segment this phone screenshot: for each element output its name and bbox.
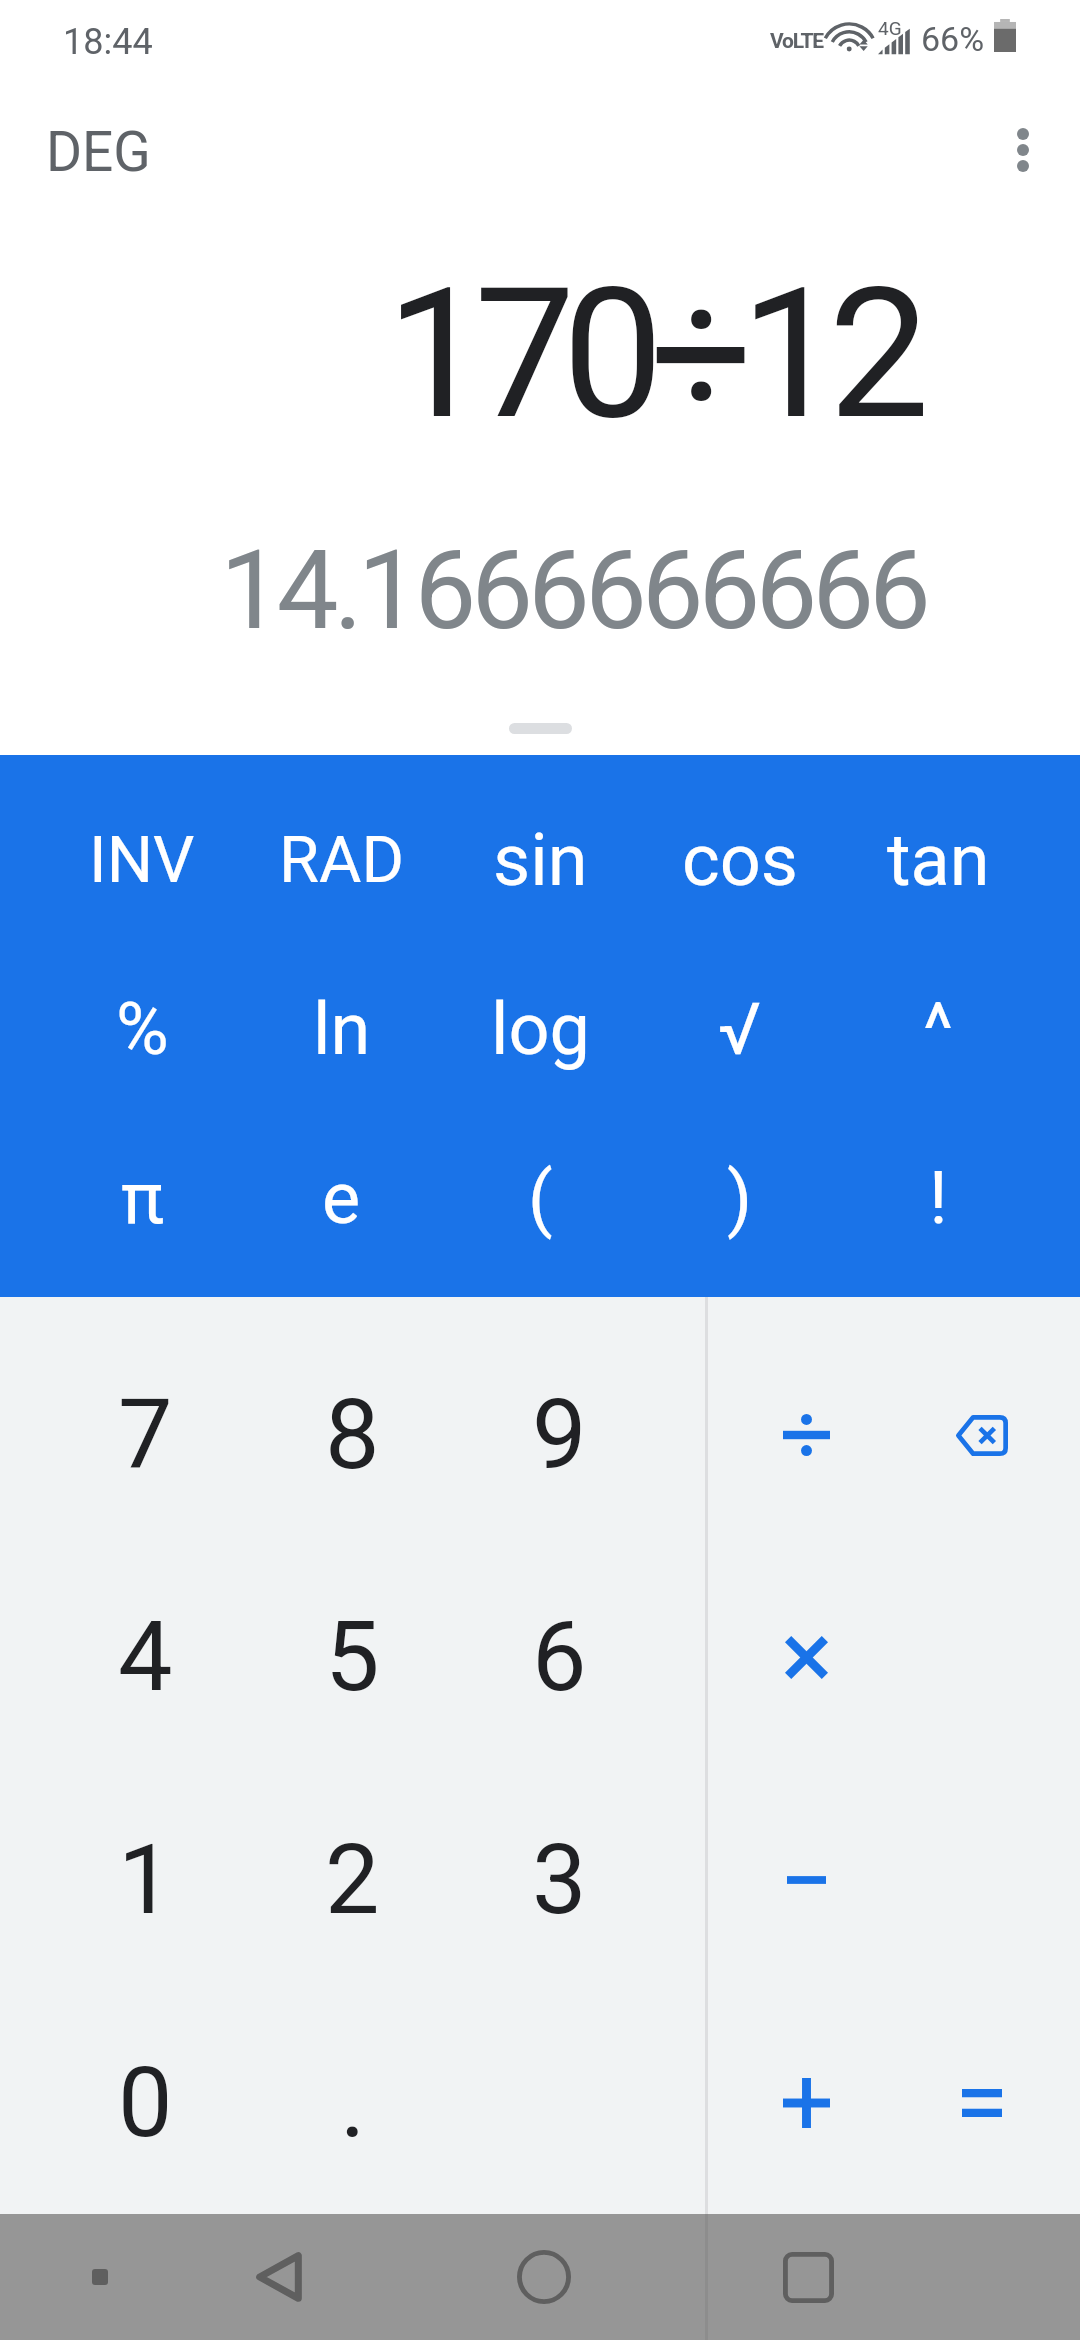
button[interactable]: 6	[456, 1546, 663, 1768]
button[interactable]: sin	[441, 775, 640, 944]
button[interactable]: Backspace	[894, 1324, 1070, 1546]
staticText: sin	[493, 818, 588, 902]
staticText: INV	[89, 822, 195, 898]
staticText: )	[727, 1156, 753, 1240]
button[interactable]: Home	[411, 2214, 676, 2340]
staticText: 2	[325, 1823, 380, 1937]
staticText: ^	[923, 987, 954, 1071]
button[interactable]: Recents	[676, 2214, 941, 2340]
button[interactable]: 1	[42, 1768, 249, 1991]
button[interactable]: π	[42, 1113, 242, 1282]
button[interactable]: 7	[42, 1324, 249, 1546]
staticText: !	[929, 1156, 948, 1240]
button[interactable]: 5	[249, 1546, 456, 1768]
button[interactable]: !	[839, 1113, 1038, 1282]
button[interactable]: %	[42, 944, 242, 1113]
button[interactable]: tan	[839, 775, 1038, 944]
staticText: %	[116, 987, 169, 1071]
staticText: 9	[532, 1378, 587, 1492]
button[interactable]: (	[441, 1113, 640, 1282]
staticText: ln	[313, 987, 371, 1071]
staticText: 1	[118, 1823, 173, 1937]
button[interactable]: 2	[249, 1768, 456, 1991]
staticText: (	[528, 1156, 553, 1240]
button[interactable]: Equals	[894, 1991, 1070, 2214]
button[interactable]: Minus	[718, 1768, 894, 1991]
staticText: 7	[118, 1378, 173, 1492]
staticText: e	[322, 1156, 361, 1240]
button[interactable]: 3	[456, 1768, 663, 1991]
staticText: RAD	[279, 822, 405, 898]
button[interactable]: RAD	[242, 775, 441, 944]
button[interactable]: )	[640, 1113, 839, 1282]
button[interactable]: 9	[456, 1324, 663, 1546]
staticText: tan	[887, 818, 990, 902]
button[interactable]: 0	[42, 1991, 249, 2214]
button[interactable]: Input method	[60, 2214, 140, 2340]
staticText: 66%	[921, 19, 985, 59]
staticText: 8	[325, 1378, 380, 1492]
staticText: 5	[325, 1600, 380, 1714]
staticText: 14.1666666666	[220, 526, 926, 655]
button[interactable]: More options	[978, 105, 1068, 195]
button[interactable]: log	[441, 944, 640, 1113]
staticText: π	[121, 1156, 164, 1240]
button[interactable]: ln	[242, 944, 441, 1113]
staticText: 170÷12	[386, 249, 917, 460]
button[interactable]: INV	[42, 775, 242, 944]
staticText: √	[718, 987, 761, 1071]
staticText: 6	[532, 1600, 587, 1714]
button[interactable]: Multiply	[718, 1546, 894, 1768]
staticText: .	[340, 2046, 366, 2160]
staticText: DEG	[46, 120, 151, 184]
button[interactable]: 8	[249, 1324, 456, 1546]
staticText: 4	[118, 1600, 173, 1714]
button[interactable]: Back	[146, 2214, 411, 2340]
staticText: cos	[682, 818, 798, 902]
staticText: VoLTE	[770, 29, 823, 54]
button[interactable]: ^	[839, 944, 1038, 1113]
button[interactable]: DEG	[0, 102, 181, 202]
staticText: 4G	[878, 17, 902, 39]
button[interactable]: Divide	[718, 1324, 894, 1546]
button[interactable]: e	[242, 1113, 441, 1282]
button[interactable]: Plus	[718, 1991, 894, 2214]
staticText: 0	[118, 2046, 173, 2160]
staticText: 18:44	[63, 21, 153, 63]
button[interactable]: 4	[42, 1546, 249, 1768]
staticText: 3	[532, 1823, 587, 1937]
button[interactable]: cos	[640, 775, 839, 944]
button[interactable]: .	[249, 1991, 456, 2214]
staticText: log	[491, 987, 590, 1071]
button[interactable]: √	[640, 944, 839, 1113]
